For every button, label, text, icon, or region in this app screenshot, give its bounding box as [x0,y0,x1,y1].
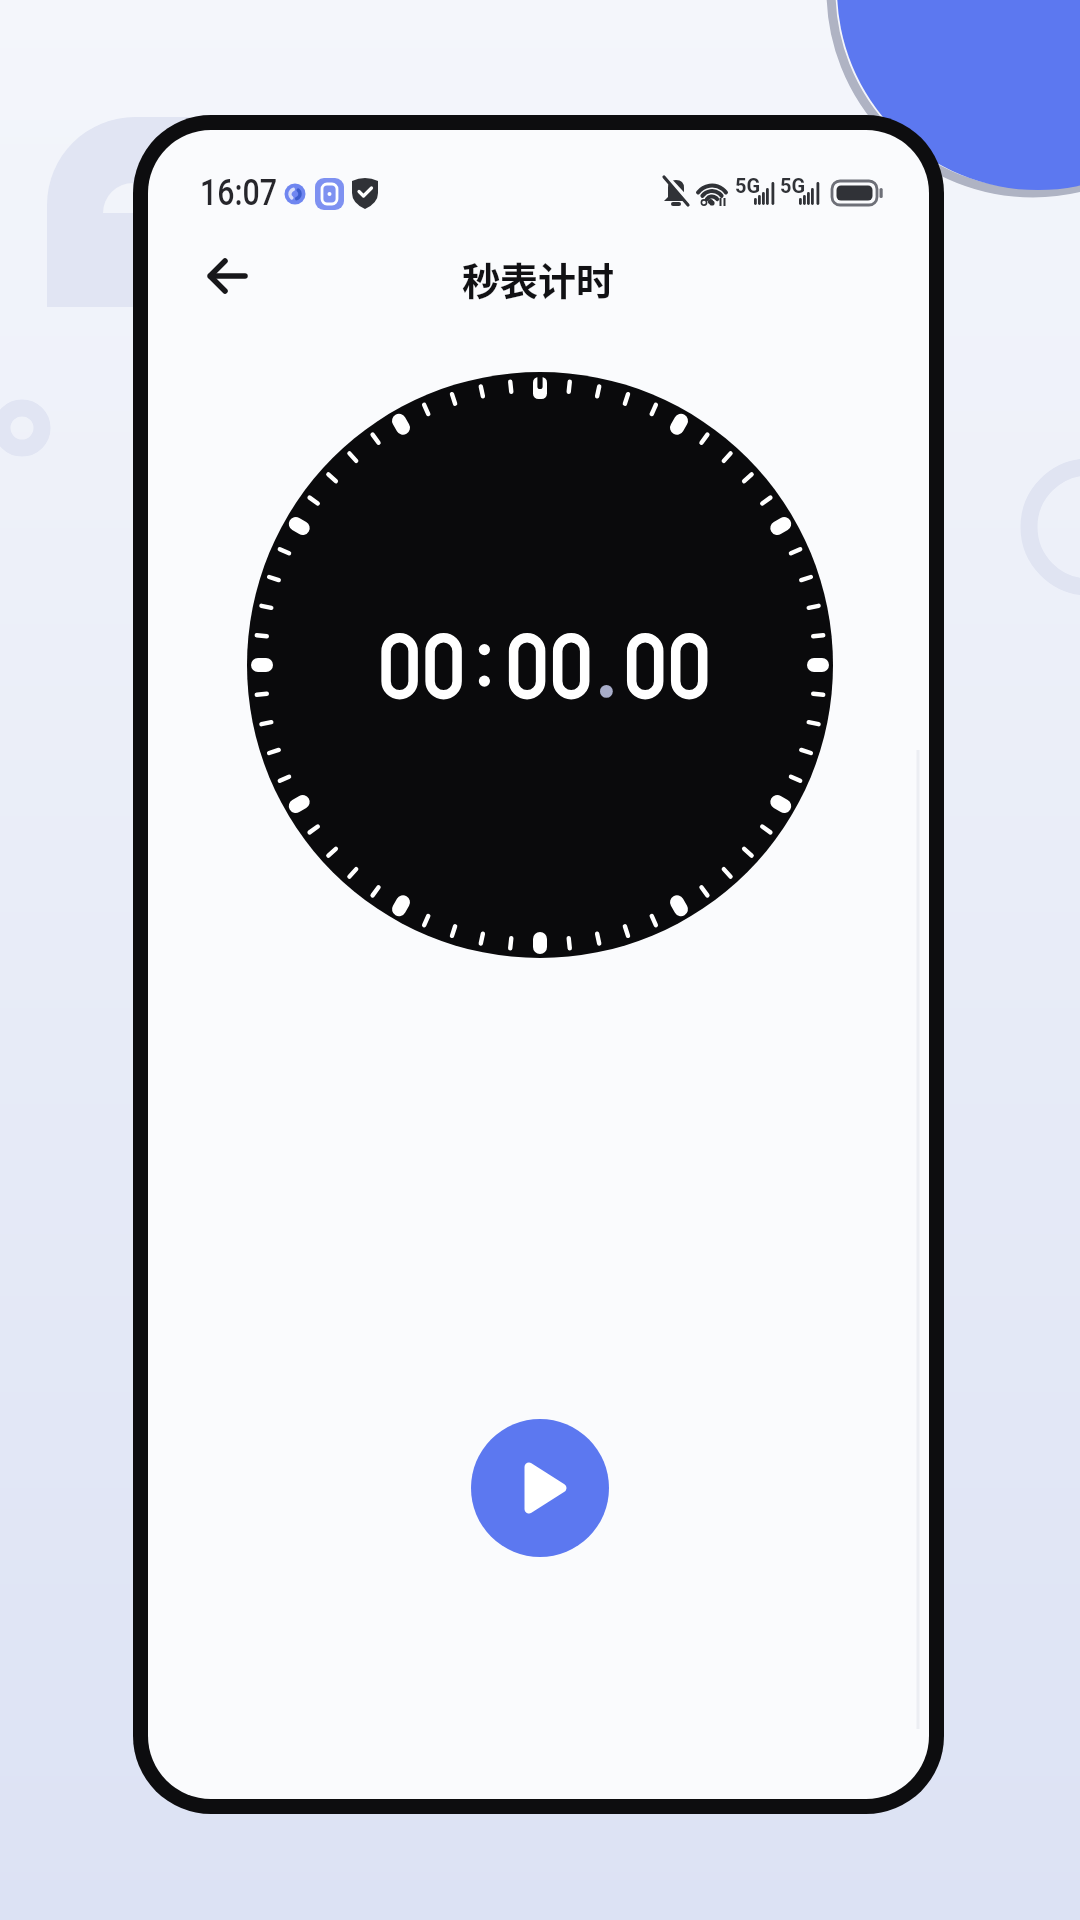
staticText: 5G [780,174,806,197]
button[interactable] [471,1419,609,1557]
staticText: 秒表计时 [462,251,615,306]
button[interactable] [196,244,260,308]
staticText: 16:07 [200,171,277,214]
staticText: 5G [735,174,761,197]
